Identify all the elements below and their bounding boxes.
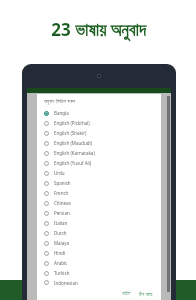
button[interactable]: French (37, 188, 161, 198)
button[interactable]: Arabic (37, 258, 161, 268)
staticText: Hindi (54, 250, 66, 256)
staticText: Urdu (54, 170, 65, 176)
button[interactable]: Urdu (37, 168, 161, 178)
staticText: Spanish (54, 180, 71, 186)
staticText: ঠিক আছে (139, 291, 153, 297)
button[interactable]: Dutch (37, 228, 161, 238)
staticText: Arabic (54, 260, 68, 266)
button[interactable]: Bangla (37, 108, 161, 118)
button[interactable]: Indonesian (37, 278, 161, 287)
button[interactable]: Persian (37, 208, 161, 218)
staticText: English (Karnataka) (54, 150, 95, 156)
staticText: Italian (54, 220, 68, 226)
button[interactable]: Spanish (37, 178, 161, 188)
staticText: Indonesian (54, 280, 78, 286)
button[interactable]: English (Karnataka) (37, 148, 161, 158)
button[interactable]: Italian (37, 218, 161, 228)
staticText: Turkish (54, 270, 70, 276)
staticText: English (Yusuf Ali) (54, 160, 92, 166)
button[interactable]: Chinese (37, 198, 161, 208)
button[interactable]: ঠিক আছে (136, 290, 156, 298)
button[interactable]: Malaya (37, 238, 161, 248)
button[interactable]: Turkish (37, 268, 161, 278)
staticText: English (Pickthal) (54, 120, 90, 126)
staticText: বাতিল (122, 291, 131, 296)
staticText: Bangla (54, 110, 69, 116)
button[interactable]: Hindi (37, 248, 161, 258)
staticText: Persian (54, 210, 70, 216)
button[interactable]: English (Maududi) (37, 138, 161, 148)
staticText: 23 ভাষায় অনুবাদ (51, 18, 146, 41)
staticText: Dutch (54, 230, 67, 236)
staticText: Malaya (54, 240, 70, 246)
staticText: Chinese (54, 200, 71, 206)
button[interactable]: বাতিল (119, 290, 134, 297)
staticText: English (Shakir) (54, 130, 87, 136)
staticText: French (54, 190, 69, 196)
staticText: English (Maududi) (54, 140, 93, 146)
staticText: অনুবাদ নির্বাচন করুন (44, 98, 76, 105)
button[interactable]: English (Shakir) (37, 128, 161, 138)
button[interactable]: English (Yusuf Ali) (37, 158, 161, 168)
button[interactable]: English (Pickthal) (37, 118, 161, 128)
